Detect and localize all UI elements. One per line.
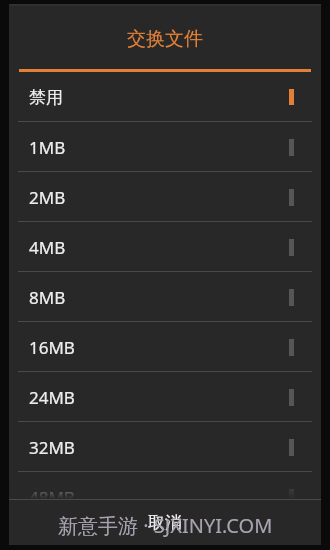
- button[interactable]: 4MB: [9, 222, 321, 272]
- staticText: 2MB: [29, 186, 66, 209]
- staticText: 4MB: [29, 236, 66, 259]
- staticText: 禁用: [29, 87, 63, 108]
- button[interactable]: 1MB: [9, 122, 321, 172]
- button[interactable]: 8MB: [9, 272, 321, 322]
- staticText: 新意手游 · SJXINYI.COM: [58, 512, 273, 539]
- button[interactable]: 取消: [9, 500, 321, 545]
- button[interactable]: 禁用: [9, 72, 321, 122]
- button[interactable]: 16MB: [9, 322, 321, 372]
- staticText: 24MB: [29, 386, 75, 409]
- staticText: 取消: [148, 512, 182, 533]
- staticText: 48MB: [29, 486, 75, 499]
- staticText: 16MB: [29, 336, 75, 359]
- staticText: 交换文件: [127, 27, 203, 51]
- staticText: 1MB: [29, 136, 66, 159]
- button[interactable]: 2MB: [9, 172, 321, 222]
- button[interactable]: 32MB: [9, 422, 321, 472]
- staticText: 8MB: [29, 286, 66, 309]
- button[interactable]: 48MB: [9, 472, 321, 499]
- staticText: 32MB: [29, 436, 75, 459]
- button[interactable]: 24MB: [9, 372, 321, 422]
